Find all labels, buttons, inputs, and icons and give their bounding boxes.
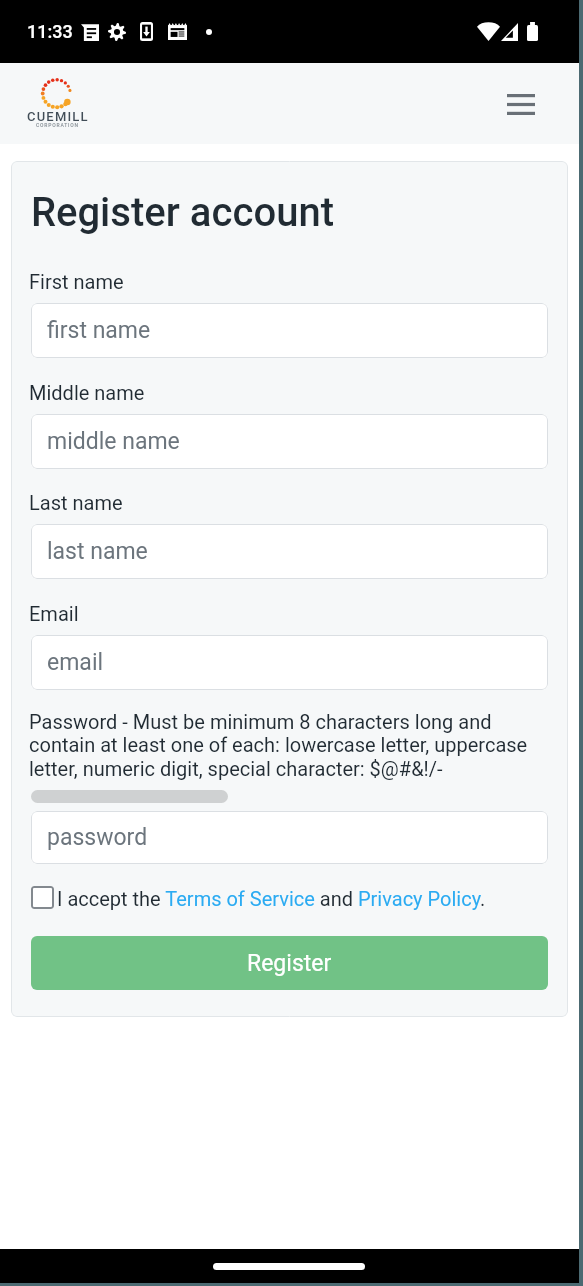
- button[interactable]: password: [31, 811, 548, 864]
- button[interactable]: last name: [31, 524, 548, 579]
- button[interactable]: I accept the Terms of Service and Privac…: [31, 886, 54, 909]
- staticText: first name: [47, 317, 151, 344]
- staticText: CORPORATION: [36, 122, 79, 128]
- staticText: middle name: [47, 428, 180, 455]
- staticText: First name: [29, 270, 124, 293]
- button[interactable]: middle name: [31, 414, 548, 469]
- staticText: Register account: [31, 189, 334, 236]
- staticText: Register: [247, 950, 332, 977]
- staticText: email: [47, 649, 104, 676]
- staticText: last name: [47, 538, 148, 565]
- button[interactable]: I accept the Terms of Service and Privac…: [57, 887, 486, 910]
- button[interactable]: Open navigation menu: [498, 81, 544, 127]
- button[interactable]: Register: [31, 936, 548, 990]
- staticText: 11:33: [27, 21, 73, 42]
- staticText: password: [47, 824, 148, 851]
- button[interactable]: first name: [31, 303, 548, 358]
- staticText: Middle name: [29, 381, 145, 404]
- button[interactable]: email: [31, 635, 548, 690]
- staticText: CUEMILL: [27, 109, 89, 124]
- staticText: Email: [29, 602, 79, 625]
- staticText: Last name: [29, 491, 123, 514]
- staticText: Password - Must be minimum 8 characters …: [29, 710, 550, 780]
